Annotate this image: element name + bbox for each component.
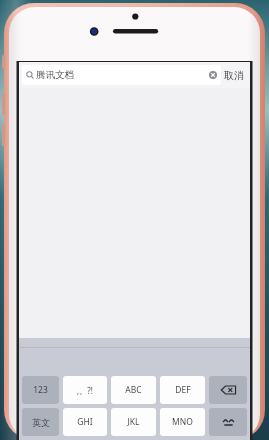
staticText: MNO bbox=[172, 416, 193, 428]
button[interactable]: 腾讯文档 bbox=[22, 65, 221, 85]
button[interactable]: Backspace bbox=[209, 376, 247, 404]
staticText: 腾讯文档 bbox=[36, 69, 74, 81]
button[interactable]: MNO bbox=[160, 408, 205, 436]
button[interactable]: 取消 bbox=[221, 64, 247, 86]
button[interactable]: 英文 bbox=[22, 408, 59, 436]
button[interactable]: GHI bbox=[63, 408, 107, 436]
staticText: ,。?! bbox=[77, 385, 93, 396]
staticText: 英文 bbox=[32, 417, 50, 428]
button[interactable]: ,。?! bbox=[63, 376, 107, 404]
button[interactable] bbox=[209, 408, 247, 436]
button[interactable]: DEF bbox=[160, 376, 205, 404]
button[interactable]: Clear search bbox=[208, 70, 218, 80]
staticText: GHI bbox=[77, 416, 93, 428]
staticText: ABC bbox=[125, 384, 142, 396]
staticText: 123 bbox=[33, 384, 48, 396]
staticText: 取消 bbox=[224, 69, 244, 82]
button[interactable]: ABC bbox=[111, 376, 156, 404]
staticText: JKL bbox=[127, 416, 140, 428]
staticText: DEF bbox=[175, 384, 191, 396]
button[interactable]: 123 bbox=[22, 376, 59, 404]
button[interactable]: JKL bbox=[111, 408, 156, 436]
